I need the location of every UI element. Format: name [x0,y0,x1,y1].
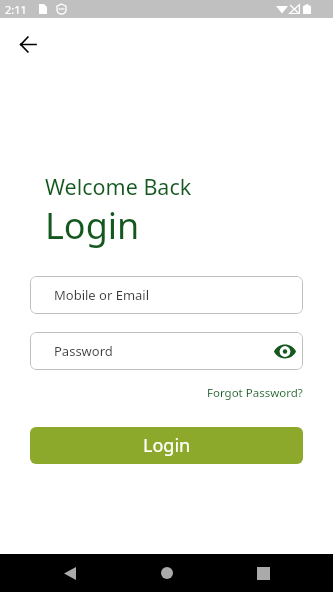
staticText: Login [143,433,191,458]
button[interactable]: Home [148,554,186,592]
button[interactable]: Login [30,427,303,464]
button[interactable]: Recent apps [244,554,282,592]
button[interactable]: Back [51,554,89,592]
button[interactable]: Back [12,30,44,62]
staticText: Welcome Back [45,172,192,201]
button[interactable]: Show password [272,338,298,364]
button[interactable]: Forgot Password? [207,385,333,401]
staticText: 2:11 [5,2,27,17]
button[interactable]: Password [30,332,303,370]
button[interactable]: Mobile or Email [30,276,303,314]
staticText: Mobile or Email [54,286,150,304]
staticText: Password [54,342,113,360]
staticText: Login [45,201,140,250]
